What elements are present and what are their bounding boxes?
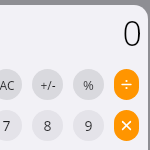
button[interactable]: 9 [73,110,104,141]
button[interactable]: 8 [32,110,63,141]
button[interactable]: 7 [0,110,22,141]
button[interactable]: AC [0,69,22,100]
button[interactable]: Multiply [114,110,139,141]
staticText: 8 [43,116,52,135]
staticText: 7 [2,116,11,135]
button[interactable]: +/- [32,69,63,100]
button[interactable]: Divide [114,69,139,100]
staticText: AC [0,77,15,93]
staticText: 9 [84,116,93,135]
staticText: +/- [40,77,56,93]
button[interactable]: % [73,69,104,100]
staticText: % [83,76,94,94]
staticText: 0 [122,10,142,56]
